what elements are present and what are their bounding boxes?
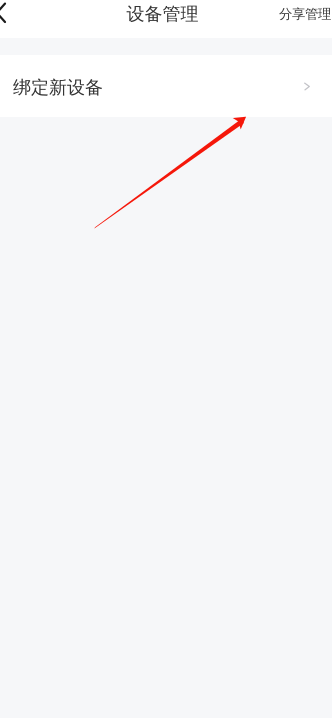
staticText: 分享管理: [279, 6, 331, 22]
staticText: 设备管理: [126, 3, 198, 25]
staticText: 绑定新设备: [13, 76, 103, 99]
button[interactable]: 分享管理: [278, 0, 332, 28]
button[interactable]: Back: [0, 0, 20, 38]
button[interactable]: 绑定新设备: [0, 55, 332, 117]
